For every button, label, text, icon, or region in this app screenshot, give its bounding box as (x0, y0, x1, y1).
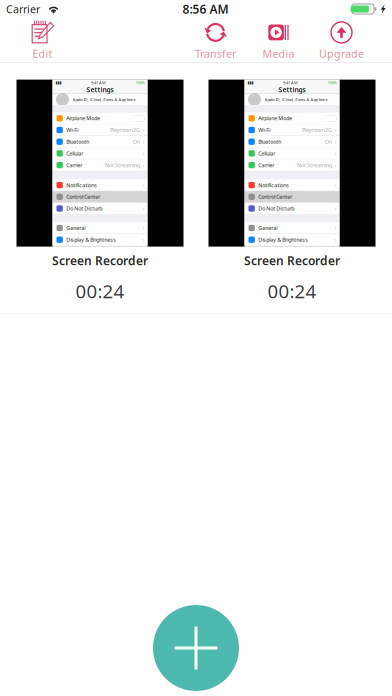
staticText: Do Not Disturb (258, 205, 294, 212)
button[interactable]: Upgrade (310, 19, 373, 61)
staticText: 8:56 AM (182, 1, 228, 17)
staticText: › (334, 137, 336, 146)
staticText: › (142, 235, 144, 244)
staticText: Control Center (66, 193, 100, 200)
staticText: ▮▮▮ (247, 80, 253, 85)
staticText: Upgrade (319, 46, 364, 61)
button[interactable]: New recording (153, 605, 239, 691)
staticText: Not Streaming (297, 162, 332, 169)
staticText: 00:24 (267, 278, 316, 303)
staticText: 100% (327, 80, 336, 85)
staticText: Control Center (258, 193, 292, 200)
staticText: Settings (86, 85, 113, 94)
staticText: › (334, 126, 336, 134)
button[interactable]: ▮▮▮ (16, 80, 183, 303)
staticText: On (325, 138, 332, 145)
staticText: 9:41 AM (283, 80, 298, 85)
staticText: Airplane Mode (258, 115, 292, 122)
staticText: ▮▮▮ (55, 80, 61, 85)
staticText: Wi-Fi (258, 126, 270, 134)
staticText: On (133, 138, 140, 145)
staticText: Edit (32, 46, 52, 61)
staticText: 00:24 (75, 278, 124, 303)
staticText: Bluetooth (258, 138, 281, 145)
button[interactable]: Transfer (184, 19, 247, 61)
staticText: › (142, 161, 144, 170)
staticText: Carrier (66, 162, 82, 169)
staticText: › (142, 181, 144, 190)
staticText: Display & Brightness (258, 236, 308, 243)
staticText: Carrier (258, 162, 274, 169)
button[interactable]: Edit (11, 19, 74, 61)
staticText: Not Streaming (105, 162, 140, 169)
staticText: 9:41 AM (91, 80, 106, 85)
button[interactable]: Media (247, 19, 310, 61)
staticText: Playroom2G (110, 126, 140, 134)
staticText: › (334, 181, 336, 190)
staticText: Media (262, 46, 294, 61)
button[interactable]: ▮▮▮ (208, 80, 375, 303)
staticText: Notifications (66, 182, 97, 189)
staticText: Cellular (66, 150, 83, 157)
staticText: › (142, 224, 144, 232)
staticText: Wi-Fi (66, 126, 78, 134)
staticText: › (334, 149, 336, 158)
staticText: › (334, 235, 336, 244)
staticText: › (334, 204, 336, 213)
staticText: Carrier (6, 2, 40, 16)
staticText: Playroom2G (302, 126, 332, 134)
staticText: › (334, 161, 336, 170)
staticText: General (258, 224, 277, 232)
staticText: Apple ID, iCloud, iTunes & App Store (72, 97, 135, 102)
staticText: Airplane Mode (66, 115, 100, 122)
staticText: › (142, 126, 144, 134)
staticText: › (142, 149, 144, 158)
staticText: Display & Brightness (66, 236, 116, 243)
staticText: Notifications (258, 182, 289, 189)
staticText: Screen Recorder (52, 253, 148, 268)
staticText: Cellular (258, 150, 275, 157)
staticText: Do Not Disturb (66, 205, 102, 212)
staticText: Screen Recorder (244, 253, 340, 268)
staticText: Bluetooth (66, 138, 89, 145)
staticText: › (142, 137, 144, 146)
staticText: › (334, 224, 336, 232)
staticText: Settings (278, 85, 305, 94)
staticText: General (66, 224, 85, 232)
staticText: Apple ID, iCloud, iTunes & App Store (264, 97, 327, 102)
staticText: › (142, 204, 144, 213)
staticText: 100% (135, 80, 144, 85)
staticText: Transfer (195, 46, 236, 61)
